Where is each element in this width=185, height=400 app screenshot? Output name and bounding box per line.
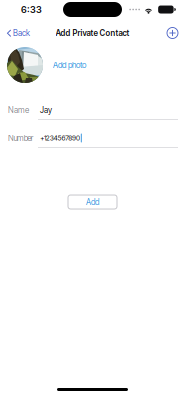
- staticText: Number: [8, 133, 34, 143]
- staticText: Add: [86, 197, 99, 207]
- button[interactable]: Contact photo: [7, 47, 43, 83]
- button[interactable]: Add: [68, 195, 117, 209]
- staticText: Back: [13, 28, 30, 38]
- button[interactable]: Add photo: [53, 56, 86, 74]
- staticText: Add Private Contact: [55, 28, 129, 38]
- staticText: Jay: [40, 105, 52, 115]
- staticText: Add photo: [53, 60, 86, 70]
- staticText: Name: [8, 105, 29, 115]
- button[interactable]: Back: [0, 24, 30, 42]
- button[interactable]: Add contact: [166, 23, 185, 43]
- staticText: +1234567890: [40, 134, 80, 142]
- staticText: 6:33: [21, 4, 42, 15]
